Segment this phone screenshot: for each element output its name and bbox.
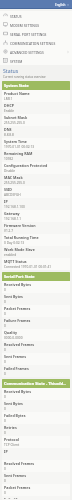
- staticText: 0: [4, 288, 6, 292]
- staticText: STATUS: [10, 14, 69, 18]
- button[interactable]: System Time: [2, 138, 70, 150]
- staticText: 0: [4, 312, 6, 316]
- staticText: System State: [4, 83, 29, 88]
- staticText: Product Name: [4, 91, 30, 96]
- staticText: 0: [4, 491, 6, 495]
- button[interactable]: Failure Frames: [2, 317, 70, 329]
- staticText: Sent Frames: [4, 354, 27, 359]
- button[interactable]: Sent Frames: [2, 472, 70, 484]
- button[interactable]: Sent Frames: [2, 353, 70, 365]
- staticText: 0: [4, 431, 6, 435]
- button[interactable]: COMMUNICATION SETTINGS: [0, 38, 72, 47]
- button[interactable]: Packet Frames: [2, 305, 70, 317]
- button[interactable]: Received Bytes: [2, 281, 70, 293]
- button[interactable]: Total Running Time: [2, 234, 70, 246]
- button[interactable]: STATUS: [0, 11, 72, 20]
- button[interactable]: Remaining RAM: [2, 150, 70, 162]
- staticText: Quality: [4, 330, 18, 335]
- staticText: Sent Bytes: [4, 294, 23, 299]
- staticText: Configuration Protected: [4, 163, 48, 168]
- staticText: 0: [4, 372, 6, 376]
- staticText: Current running status overview: [3, 75, 46, 79]
- staticText: Remaining RAM: [4, 151, 33, 156]
- button[interactable]: MAC Mask: [2, 174, 70, 186]
- button[interactable]: Failed Frames: [2, 365, 70, 377]
- staticText: Retries: [4, 425, 17, 430]
- staticText: IP: [4, 199, 8, 204]
- button[interactable]: DHCP: [2, 102, 70, 114]
- staticText: Work Mode Slave: [4, 247, 35, 252]
- button[interactable]: Gateway: [2, 210, 70, 222]
- staticText: MODEM SETTINGS: [10, 23, 69, 27]
- staticText: Connected 1970-01-01 00:01:41: [4, 265, 52, 269]
- staticText: LM51: [4, 97, 13, 101]
- button[interactable]: SERIAL PORT SETTINGS: [0, 29, 72, 38]
- staticText: Serial Port State: [4, 274, 35, 279]
- staticText: 192.168.1.1: [4, 217, 22, 221]
- staticText: Communication State - Thisoddpriest: [4, 381, 68, 386]
- button[interactable]: DNS: [2, 126, 70, 138]
- button[interactable]: Sent Bytes: [2, 400, 70, 412]
- staticText: Resolved Frames: [4, 342, 35, 347]
- button[interactable]: Retries: [2, 424, 70, 436]
- staticText: 0 Day 0:02:13: [4, 241, 25, 245]
- staticText: Packet Frames: [4, 485, 31, 490]
- staticText: Subnet Mask: [4, 115, 28, 120]
- button[interactable]: MQTT Status: [2, 258, 70, 270]
- button[interactable]: Packet Frames: [2, 484, 70, 496]
- staticText: Resolved Frames: [4, 461, 35, 466]
- staticText: V1.2.7: [4, 229, 14, 233]
- button[interactable]: SSID: [2, 186, 70, 198]
- staticText: 192.168.1.100: [4, 205, 25, 209]
- staticText: 0: [4, 395, 6, 399]
- staticText: 0: [4, 324, 6, 328]
- button[interactable]: ADVANCED SETTINGS: [0, 47, 72, 56]
- staticText: Gateway: [4, 211, 20, 216]
- staticText: 255.255.255.0: [4, 181, 25, 185]
- staticText: 1970-01-01 00:02:13: [4, 145, 35, 149]
- staticText: COMMUNICATION SETTINGS: [10, 41, 69, 45]
- staticText: 0: [4, 407, 6, 411]
- staticText: Protocol: [4, 437, 19, 442]
- staticText: Failed Frames: [4, 366, 29, 371]
- button[interactable]: SYSTEM: [0, 56, 72, 65]
- button[interactable]: Received Bytes: [2, 388, 70, 400]
- button[interactable]: Failed Frames: [2, 496, 70, 500]
- button[interactable]: Failed Bytes: [2, 412, 70, 424]
- button[interactable]: Work Mode Slave: [2, 246, 70, 258]
- button[interactable]: Resolved Frames: [2, 460, 70, 472]
- button[interactable]: MODEM SETTINGS: [0, 20, 72, 29]
- staticText: Disable: [4, 169, 16, 173]
- staticText: Packet Frames: [4, 306, 31, 311]
- staticText: IP: [4, 449, 8, 454]
- button[interactable]: Subnet Mask: [2, 114, 70, 126]
- button[interactable]: Quality: [2, 329, 70, 341]
- staticText: Total Running Time: [4, 235, 39, 240]
- staticText: Sent Frames: [4, 473, 27, 478]
- button[interactable]: IP: [2, 198, 70, 210]
- button[interactable]: Resolved Frames: [2, 341, 70, 353]
- staticText: 8.8.8.8: [4, 133, 14, 137]
- button[interactable]: Firmware Version: [2, 222, 70, 234]
- button[interactable]: Product Name: [2, 90, 70, 102]
- staticText: English: [55, 3, 66, 7]
- staticText: DNS: [4, 127, 12, 132]
- button[interactable]: IP: [2, 448, 70, 460]
- staticText: ABCDEFGH: [4, 193, 21, 197]
- button[interactable]: Configuration Protected: [2, 162, 70, 174]
- staticText: 0: [4, 419, 6, 423]
- staticText: Enable: [4, 109, 15, 113]
- staticText: SSID: [4, 187, 12, 192]
- button[interactable]: Protocol: [2, 436, 70, 448]
- button[interactable]: Sent Bytes: [2, 293, 70, 305]
- staticText: Received Bytes: [4, 282, 31, 287]
- button[interactable]: English: [54, 2, 70, 8]
- staticText: SYSTEM: [10, 59, 69, 63]
- staticText: DHCP: [4, 103, 14, 108]
- staticText: Status: [3, 67, 19, 74]
- staticText: TCP Client: [4, 443, 20, 447]
- staticText: 0: [4, 348, 6, 352]
- staticText: 0: [4, 360, 6, 364]
- staticText: 0: [4, 479, 6, 483]
- staticText: enabled: [4, 253, 17, 257]
